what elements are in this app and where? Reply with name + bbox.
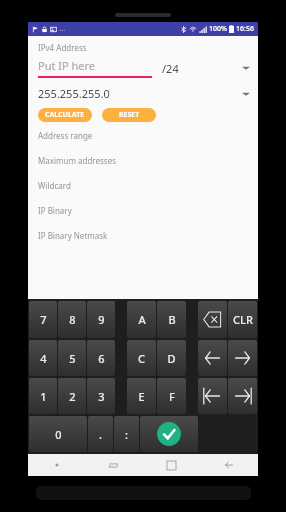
staticText: F <box>169 389 175 404</box>
staticText: 4 <box>40 351 47 366</box>
button[interactable]: Wildcard <box>38 173 250 198</box>
staticText: . <box>99 427 102 442</box>
button[interactable]: F <box>157 378 186 414</box>
button[interactable]: Home <box>142 454 200 476</box>
staticText: CALCULATE <box>45 110 85 120</box>
button[interactable]: Prefix dropdown <box>242 65 250 71</box>
staticText: 7 <box>40 312 47 327</box>
staticText: /24 <box>162 61 179 76</box>
button[interactable]: E <box>127 378 156 414</box>
staticText: 9 <box>98 312 105 327</box>
staticText: 5 <box>69 351 76 366</box>
button[interactable]: 7 <box>29 301 57 338</box>
button[interactable]: Address range <box>38 123 250 148</box>
button[interactable]: D <box>157 340 186 376</box>
staticText: 3 <box>98 389 105 404</box>
staticText: Wildcard <box>38 180 71 191</box>
staticText: IP Binary <box>38 205 72 216</box>
staticText: IPv4 Address <box>38 42 87 53</box>
button[interactable]: 255.255.255.0 <box>38 86 250 101</box>
button[interactable]: Left <box>198 378 227 414</box>
button[interactable]: /24 <box>162 61 242 76</box>
button[interactable]: 0 <box>29 416 87 452</box>
button[interactable]: CALCULATE <box>45 108 85 122</box>
button[interactable]: 9 <box>87 301 115 338</box>
staticText: 8 <box>69 312 76 327</box>
button[interactable]: . <box>88 416 113 452</box>
button[interactable]: Confirm <box>140 416 198 452</box>
button[interactable]: 6 <box>87 340 115 376</box>
button[interactable]: Assistant <box>28 454 85 476</box>
button[interactable]: RESET <box>102 108 156 122</box>
staticText: 6 <box>98 351 105 366</box>
button[interactable]: 1 <box>29 378 57 414</box>
staticText: E <box>138 389 145 404</box>
staticText: 1 <box>40 389 47 404</box>
button[interactable]: 2 <box>58 378 86 414</box>
button[interactable]: C <box>127 340 156 376</box>
button[interactable]: Right <box>228 340 257 376</box>
staticText: C <box>138 351 145 366</box>
button[interactable]: Maximum addresses <box>38 148 250 173</box>
button[interactable]: CLR <box>228 301 257 338</box>
button[interactable]: IP Binary Netmask <box>38 223 250 248</box>
button[interactable]: Backspace <box>198 301 227 338</box>
button[interactable]: : <box>114 416 139 452</box>
staticText: IP Binary Netmask <box>38 230 108 241</box>
staticText: Maximum addresses <box>38 155 117 166</box>
staticText: 0 <box>55 427 62 442</box>
staticText: B <box>168 312 176 327</box>
button[interactable]: Put IP here <box>38 58 152 78</box>
button[interactable]: B <box>157 301 186 338</box>
button[interactable]: 3 <box>87 378 115 414</box>
staticText: 255.255.255.0 <box>38 86 110 101</box>
staticText: RESET <box>119 110 140 120</box>
staticText: Put IP here <box>38 58 96 73</box>
button[interactable]: Switch <box>85 454 142 476</box>
button[interactable]: 4 <box>29 340 57 376</box>
staticText: A <box>138 312 146 327</box>
staticText: : <box>125 427 128 442</box>
staticText: D <box>167 351 176 366</box>
button[interactable]: 8 <box>58 301 86 338</box>
staticText: 2 <box>69 389 76 404</box>
button[interactable]: Right <box>228 378 257 414</box>
staticText: Address range <box>38 130 93 141</box>
staticText: 100% <box>209 24 227 34</box>
staticText: CLR <box>233 312 253 327</box>
button[interactable]: 5 <box>58 340 86 376</box>
button[interactable]: IP Binary <box>38 198 250 223</box>
staticText: 16:56 <box>236 24 254 34</box>
button[interactable]: Back <box>200 454 258 476</box>
button[interactable]: A <box>127 301 156 338</box>
button[interactable]: Left <box>198 340 227 376</box>
